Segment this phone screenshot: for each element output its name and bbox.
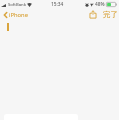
staticText: SoftBank	[8, 2, 27, 8]
button[interactable]: 完了	[102, 10, 119, 19]
staticText: 完了	[103, 10, 118, 19]
staticText: 15:34	[51, 1, 64, 8]
button[interactable]: Share	[88, 10, 97, 19]
staticText: iPhone	[9, 11, 28, 19]
button[interactable]: iPhone	[0, 9, 28, 20]
staticText: 48%	[95, 1, 105, 8]
